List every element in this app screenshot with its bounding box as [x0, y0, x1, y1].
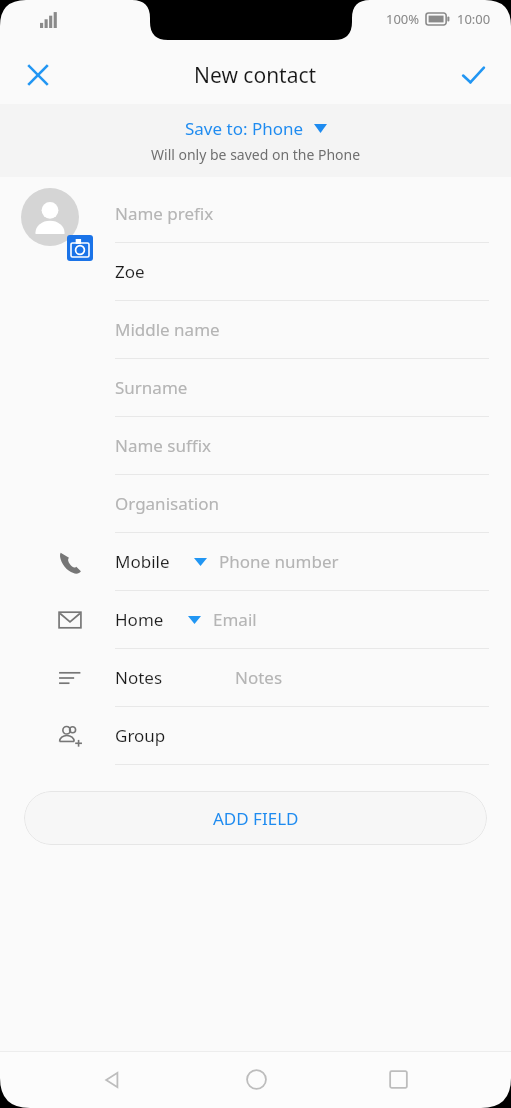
staticText: Name prefix	[115, 202, 214, 225]
staticText: Email	[213, 608, 257, 631]
staticText: Surname	[115, 376, 188, 399]
staticText: 100%	[386, 10, 420, 28]
button[interactable]: Notes	[0, 649, 511, 707]
button[interactable]: ADD FIELD	[24, 791, 487, 845]
button[interactable]: Recents	[368, 1051, 428, 1108]
button[interactable]: Mobile	[0, 533, 511, 591]
staticText: Group	[115, 724, 166, 747]
button[interactable]: Organisation	[0, 475, 511, 533]
staticText: Zoe	[115, 260, 145, 283]
staticText: Notes	[115, 666, 163, 689]
staticText: Home	[115, 608, 164, 631]
staticText: Will only be saved on the Phone	[151, 145, 361, 164]
staticText: 10:00	[457, 10, 491, 28]
button[interactable]: Contact photo	[21, 188, 93, 246]
staticText: Organisation	[115, 492, 220, 515]
staticText: Mobile	[115, 550, 170, 573]
staticText: Notes	[235, 666, 283, 689]
staticText: Phone number	[219, 550, 339, 573]
staticText: Save to: Phone	[185, 117, 304, 140]
button[interactable]: Save to: Phone	[0, 104, 511, 177]
button[interactable]: Surname	[0, 359, 511, 417]
button[interactable]: Group	[0, 707, 511, 765]
button[interactable]: Middle name	[0, 301, 511, 359]
button[interactable]: Zoe	[0, 243, 511, 301]
staticText: Middle name	[115, 318, 220, 341]
button[interactable]: Home	[226, 1051, 286, 1108]
button[interactable]: Close	[10, 47, 66, 103]
staticText: Name suffix	[115, 434, 212, 457]
button[interactable]: Home	[0, 591, 511, 649]
staticText: ADD FIELD	[213, 807, 299, 830]
button[interactable]: Save	[445, 47, 501, 103]
button[interactable]: Back	[83, 1051, 143, 1108]
button[interactable]: Name suffix	[0, 417, 511, 475]
staticText: New contact	[194, 61, 317, 90]
